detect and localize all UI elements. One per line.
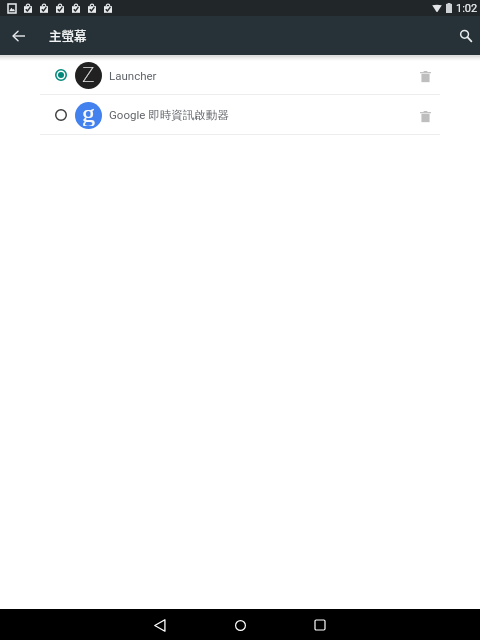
staticText: 主螢幕 — [49, 26, 87, 44]
button[interactable]: Back — [145, 610, 175, 640]
button[interactable]: Back — [1, 18, 37, 54]
button[interactable]: Delete — [410, 100, 440, 130]
staticText: 1:02 — [456, 2, 478, 15]
button[interactable]: Search — [448, 18, 480, 54]
button[interactable]: Home — [225, 610, 255, 640]
staticText: Launcher — [109, 69, 157, 82]
button[interactable]: Z — [0, 55, 480, 95]
button[interactable]: g — [0, 95, 480, 135]
button[interactable]: Delete — [410, 60, 440, 90]
staticText: Z — [82, 63, 95, 88]
staticText: g — [82, 102, 95, 126]
button[interactable]: Recent apps — [305, 610, 335, 640]
staticText: Google 即時資訊啟動器 — [109, 108, 229, 122]
